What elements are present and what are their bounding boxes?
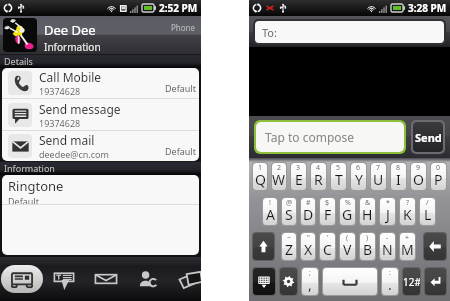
button[interactable]: Send [413,122,443,152]
staticText: - [386,233,389,243]
button[interactable]: A [263,198,277,225]
staticText: Q [255,170,266,189]
staticText: ? [406,198,410,208]
staticText: Z [285,240,294,259]
button[interactable]: Call Mobile [2,68,199,98]
staticText: ~ [287,233,292,243]
staticText: T [335,170,343,189]
button[interactable]: To: [255,21,444,43]
staticText: % [345,198,351,208]
button[interactable]: People [127,257,169,301]
staticText: 5 [336,163,341,173]
button[interactable]: . [382,268,398,295]
button[interactable]: I [391,163,406,190]
button[interactable]: H [360,198,375,225]
staticText: ; [309,268,311,278]
staticText: B [363,240,373,259]
staticText: I [396,170,401,189]
staticText: deedee@cn.com [39,148,109,160]
staticText: ' [327,233,329,243]
staticText: 3 [296,163,301,173]
button[interactable]: Q [253,163,267,190]
button[interactable]: Photos [169,257,211,301]
staticText: . [388,275,392,294]
button[interactable]: 12# [403,268,420,295]
button[interactable]: D [301,198,315,225]
staticText: 19374628 [39,117,81,129]
staticText: Details [4,55,33,67]
button[interactable]: O [411,163,426,190]
staticText: M [401,240,414,259]
button[interactable]: J [380,198,395,225]
button[interactable]: Mail [85,257,127,301]
button[interactable]: R [311,163,326,190]
button[interactable]: Send mail [2,131,199,161]
button[interactable]: Contact card [1,257,43,301]
button[interactable]: M [400,233,415,260]
staticText: Tap to compose [265,129,355,145]
button[interactable]: Y [351,163,366,190]
staticText: F [324,205,332,224]
staticText: 12# [403,275,420,289]
button[interactable]: Enter [425,268,446,295]
button[interactable]: Z [282,233,296,260]
button[interactable]: Shift [253,233,274,260]
staticText: N [382,240,393,259]
button[interactable]: K [400,198,415,225]
staticText: Default [8,195,39,204]
staticText: ( [346,233,349,243]
staticText: 3:28 PM [408,1,447,15]
button[interactable]: U [371,163,386,190]
staticText: 19374628 [39,85,81,97]
staticText: 8 [396,163,401,173]
button[interactable]: P [431,163,446,190]
button[interactable]: Input method [253,268,275,295]
button[interactable]: N [380,233,395,260]
button[interactable]: space [323,268,377,295]
staticText: ) [366,233,369,243]
button[interactable]: E [291,163,306,190]
staticText: U [373,170,384,189]
staticText: J [386,205,390,224]
staticText: C [323,240,332,259]
button[interactable]: S [282,198,296,225]
staticText: A [266,205,275,224]
button[interactable]: Messages [43,257,85,301]
button[interactable]: W [272,163,286,190]
button[interactable]: Ringtone [2,175,199,204]
staticText: W [272,170,286,189]
button[interactable]: T [331,163,346,190]
staticText: To: [262,25,277,40]
button[interactable]: Dee Dee [0,16,201,54]
staticText: Send [415,130,442,145]
staticText: , [308,275,312,294]
staticText: 0 [436,163,441,173]
button[interactable]: L [420,198,435,225]
button[interactable]: F [320,198,335,225]
staticText: R [314,170,323,189]
staticText: Information [44,40,101,54]
button[interactable]: G [340,198,355,225]
staticText: D [303,205,314,224]
button[interactable]: V [340,233,355,260]
button[interactable]: Tap to compose [256,122,404,152]
button[interactable]: C [320,233,335,260]
staticText: G [342,205,353,224]
staticText: P [434,170,443,189]
staticText: Send mail [39,132,95,148]
staticText: 2 [277,163,282,173]
button[interactable]: B [360,233,375,260]
staticText: Send message [39,101,121,117]
staticText: H [362,205,373,224]
button[interactable]: X [301,233,315,260]
button[interactable]: Backspace [424,233,446,260]
button[interactable]: , [302,268,318,295]
staticText: ! [269,198,271,208]
button[interactable]: Send message [2,99,199,130]
staticText: $ [325,198,330,208]
staticText: : [389,268,391,278]
button[interactable]: Settings [280,268,297,295]
staticText: 6 [356,163,361,173]
staticText: 2:52 PM [159,1,198,15]
staticText: " [307,233,310,243]
